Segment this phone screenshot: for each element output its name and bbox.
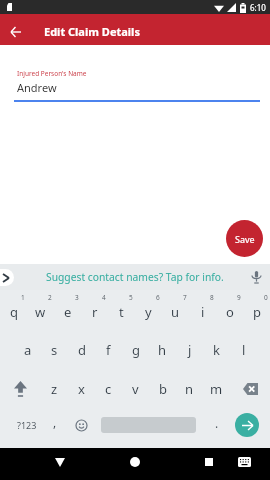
button[interactable]	[0, 269, 14, 286]
staticText: r	[92, 303, 98, 321]
staticText: l	[242, 341, 246, 359]
staticText: a	[24, 341, 32, 359]
staticText: 5	[129, 293, 133, 302]
staticText: Edit Claim Details	[44, 24, 140, 39]
button[interactable]: l	[230, 330, 257, 369]
button[interactable]: v	[122, 369, 149, 408]
staticText: f	[106, 341, 111, 359]
button[interactable]	[230, 369, 270, 408]
staticText: k	[213, 341, 220, 359]
staticText: s	[51, 341, 58, 359]
button[interactable]: Save	[226, 220, 263, 257]
button[interactable]: b	[149, 369, 176, 408]
staticText: q	[10, 303, 18, 321]
button[interactable]: s	[41, 330, 68, 369]
staticText: 8	[210, 293, 214, 302]
button[interactable]: w	[27, 290, 54, 330]
button[interactable]	[235, 413, 259, 437]
button[interactable]	[68, 405, 95, 445]
staticText: 0	[264, 293, 268, 302]
button[interactable]: Suggest contact names? Tap for info.	[46, 270, 224, 284]
button[interactable]: p	[243, 290, 270, 330]
button[interactable]: ,	[41, 408, 68, 448]
button[interactable]: a	[14, 330, 41, 369]
staticText: 1	[21, 293, 25, 302]
button[interactable]: m	[203, 369, 230, 408]
staticText: u	[171, 303, 180, 321]
button[interactable]	[193, 446, 225, 478]
button[interactable]: z	[41, 369, 68, 408]
staticText: 6	[156, 293, 160, 302]
staticText: z	[51, 380, 58, 398]
button[interactable]: r	[81, 290, 108, 330]
staticText: 6:10	[250, 2, 266, 13]
staticText: b	[159, 380, 167, 398]
staticText: ,	[53, 414, 57, 430]
button[interactable]: d	[68, 330, 95, 369]
button[interactable]: f	[95, 330, 122, 369]
button[interactable]: u	[162, 290, 189, 330]
button[interactable]	[0, 16, 31, 47]
button[interactable]: k	[203, 330, 230, 369]
button[interactable]: ?123	[0, 408, 54, 448]
staticText: .	[215, 415, 219, 431]
button[interactable]: t	[108, 290, 135, 330]
button[interactable]: q	[0, 290, 27, 330]
staticText: j	[188, 341, 192, 359]
staticText: e	[64, 303, 72, 321]
staticText: x	[78, 380, 85, 398]
staticText: o	[226, 303, 234, 321]
staticText: 9	[237, 293, 241, 302]
staticText: 7	[183, 293, 187, 302]
button[interactable]	[228, 446, 260, 478]
staticText: d	[78, 341, 86, 359]
button[interactable]: x	[68, 369, 95, 408]
button[interactable]	[119, 446, 151, 478]
button[interactable]: e	[54, 290, 81, 330]
button[interactable]: n	[176, 369, 203, 408]
staticText: h	[158, 341, 167, 359]
staticText: w	[35, 303, 46, 321]
staticText: c	[105, 380, 112, 398]
staticText: Save	[235, 233, 255, 245]
staticText: p	[253, 303, 261, 321]
staticText: 4	[102, 293, 106, 302]
button[interactable]	[44, 446, 76, 478]
staticText: n	[185, 380, 194, 398]
button[interactable]	[0, 369, 40, 408]
button[interactable]: g	[122, 330, 149, 369]
button[interactable]: i	[189, 290, 216, 330]
staticText: 3	[75, 293, 79, 302]
button[interactable]: o	[216, 290, 243, 330]
button[interactable]: j	[176, 330, 203, 369]
staticText: m	[210, 380, 223, 398]
staticText: Injured Person's Name	[17, 69, 87, 78]
button[interactable]: h	[149, 330, 176, 369]
staticText: t	[119, 303, 124, 321]
staticText: ?123	[17, 419, 37, 431]
staticText: g	[132, 341, 140, 359]
button[interactable]: y	[135, 290, 162, 330]
staticText: i	[201, 303, 205, 321]
staticText: y	[145, 303, 152, 321]
button[interactable]: c	[95, 369, 122, 408]
staticText: 2	[48, 293, 52, 302]
button[interactable]: .	[203, 408, 230, 448]
staticText: Andrew	[17, 80, 57, 95]
staticText: v	[132, 380, 139, 398]
